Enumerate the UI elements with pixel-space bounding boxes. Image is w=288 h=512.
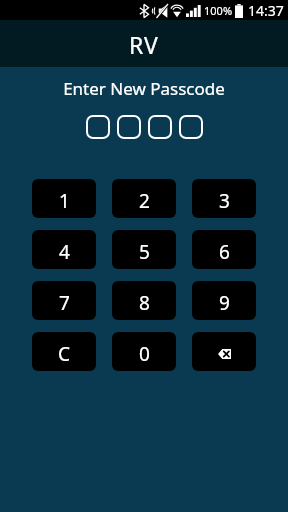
button[interactable]: Delete xyxy=(192,332,256,371)
button[interactable]: 5 xyxy=(112,230,176,269)
staticText: 9 xyxy=(219,290,230,316)
staticText: 100% xyxy=(204,3,233,18)
staticText: 3 xyxy=(219,188,230,214)
button[interactable]: C xyxy=(32,332,96,371)
button[interactable]: 3 xyxy=(192,179,256,218)
button[interactable]: 1 xyxy=(32,179,96,218)
staticText: 7 xyxy=(59,290,70,316)
staticText: 0 xyxy=(139,341,150,367)
button[interactable]: 0 xyxy=(112,332,176,371)
staticText: Enter New Passcode xyxy=(0,77,288,100)
staticText: 2 xyxy=(139,188,150,214)
button[interactable]: 8 xyxy=(112,281,176,320)
button[interactable]: 6 xyxy=(192,230,256,269)
staticText: 6 xyxy=(219,239,230,265)
staticText: 14:37 xyxy=(248,1,284,20)
staticText: RV xyxy=(129,29,159,60)
staticText: 4 xyxy=(59,239,70,265)
button[interactable]: 7 xyxy=(32,281,96,320)
staticText: 1 xyxy=(59,188,70,214)
staticText: C xyxy=(58,341,71,367)
button[interactable]: 2 xyxy=(112,179,176,218)
button[interactable]: 9 xyxy=(192,281,256,320)
other: Backspace xyxy=(218,349,231,359)
staticText: 5 xyxy=(139,239,150,265)
button[interactable]: 4 xyxy=(32,230,96,269)
staticText: 8 xyxy=(139,290,150,316)
